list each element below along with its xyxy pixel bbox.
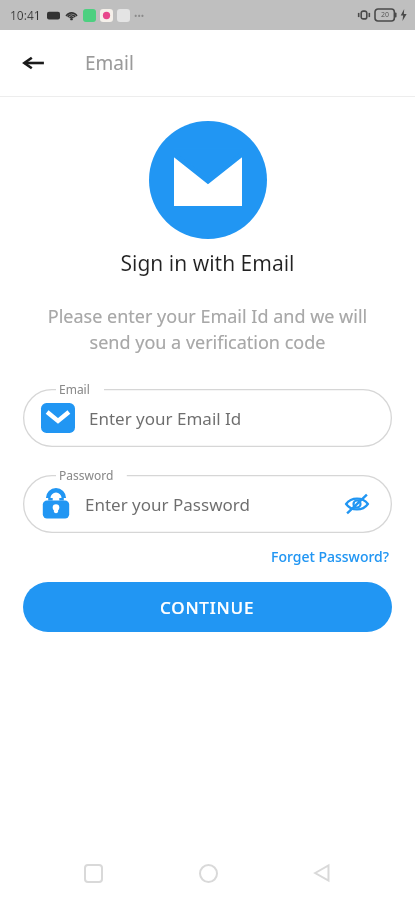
button[interactable]: Back xyxy=(300,851,344,895)
button[interactable]: Show password xyxy=(340,487,374,521)
staticText: 20 xyxy=(381,10,390,20)
staticText: Enter your Password xyxy=(85,493,250,516)
staticText: CONTINUE xyxy=(160,596,255,619)
button[interactable]: Enter your Email Id xyxy=(23,389,392,447)
staticText: Password xyxy=(59,467,114,483)
staticText: ••• xyxy=(134,9,145,21)
button[interactable]: Back xyxy=(14,43,54,83)
button[interactable]: CONTINUE xyxy=(23,582,392,632)
staticText: Sign in with Email xyxy=(0,249,415,278)
staticText: Email xyxy=(85,50,134,76)
staticText: Enter your Email Id xyxy=(89,407,242,430)
button[interactable]: Enter your Password xyxy=(23,475,392,533)
button[interactable]: Recents xyxy=(71,851,115,895)
staticText: Please enter your Email Id and we will s… xyxy=(20,304,395,355)
staticText: 10:41 xyxy=(10,7,41,23)
button[interactable]: Home xyxy=(186,851,230,895)
button[interactable]: Forget Password? xyxy=(269,543,392,570)
staticText: Forget Password? xyxy=(271,547,390,566)
staticText: Email xyxy=(59,381,90,397)
